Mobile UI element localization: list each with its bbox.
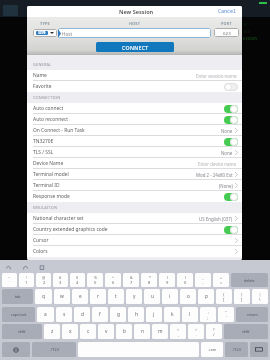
button[interactable]: Terminal ID bbox=[27, 180, 242, 191]
button[interactable]: g bbox=[110, 307, 126, 322]
button[interactable]: x bbox=[62, 324, 78, 339]
button[interactable]: $ bbox=[70, 273, 85, 287]
button[interactable]: d bbox=[74, 307, 90, 322]
other: Hide keyboard bbox=[255, 346, 263, 354]
button[interactable]: # bbox=[53, 273, 68, 287]
button[interactable]: delete bbox=[231, 273, 268, 287]
button[interactable]: e bbox=[72, 289, 88, 304]
button[interactable]: f bbox=[92, 307, 108, 322]
button[interactable]: tab bbox=[2, 289, 33, 304]
button[interactable] bbox=[224, 83, 238, 91]
staticText: x bbox=[69, 328, 72, 335]
staticText: .?123 bbox=[232, 347, 241, 352]
button[interactable]: m bbox=[152, 324, 168, 339]
button[interactable]: shift bbox=[224, 324, 268, 339]
button[interactable]: z bbox=[44, 324, 60, 339]
button[interactable]: u bbox=[144, 289, 160, 304]
button[interactable]: Undo bbox=[5, 264, 12, 271]
button[interactable]: TN3270E bbox=[27, 136, 242, 147]
button[interactable]: < bbox=[170, 324, 186, 339]
staticText: % bbox=[94, 275, 97, 280]
button[interactable]: .?123 bbox=[32, 342, 76, 357]
button[interactable]: National character set bbox=[27, 213, 242, 224]
staticText: k bbox=[171, 311, 174, 318]
button[interactable]: Country extended graphics code bbox=[27, 224, 242, 235]
button[interactable]: Auto connect bbox=[27, 103, 242, 114]
button[interactable] bbox=[224, 105, 238, 113]
button[interactable]: Host bbox=[58, 28, 211, 38]
button[interactable]: ? bbox=[206, 324, 222, 339]
staticText: q bbox=[42, 293, 45, 300]
button[interactable]: Cancel bbox=[218, 8, 237, 15]
staticText: delete bbox=[244, 278, 255, 283]
button[interactable]: : bbox=[200, 307, 216, 322]
button[interactable]: k bbox=[164, 307, 180, 322]
button[interactable]: .?123 bbox=[225, 342, 248, 357]
button[interactable]: Hide keyboard bbox=[250, 342, 268, 357]
staticText: h bbox=[135, 311, 138, 318]
staticText: Device Name bbox=[33, 160, 64, 167]
button[interactable]: caps lock bbox=[2, 307, 35, 322]
button[interactable]: Device Name bbox=[27, 158, 242, 169]
button[interactable]: j bbox=[146, 307, 162, 322]
button[interactable]: > bbox=[188, 324, 204, 339]
button[interactable]: ( bbox=[159, 273, 175, 287]
button[interactable]: q bbox=[35, 289, 52, 304]
button[interactable]: i bbox=[162, 289, 178, 304]
button[interactable]: w bbox=[54, 289, 70, 304]
button[interactable]: l bbox=[182, 307, 198, 322]
button[interactable]: s bbox=[56, 307, 72, 322]
button[interactable]: t bbox=[108, 289, 124, 304]
button[interactable]: Auto reconnect bbox=[27, 114, 242, 125]
button[interactable]: Cursor bbox=[27, 235, 242, 246]
button[interactable]: & bbox=[123, 273, 139, 287]
button[interactable]: c bbox=[80, 324, 96, 339]
button[interactable]: Redo bbox=[22, 264, 29, 271]
button[interactable]: _ bbox=[195, 273, 211, 287]
button[interactable]: % bbox=[87, 273, 103, 287]
button[interactable]: p bbox=[198, 289, 214, 304]
button[interactable]: + bbox=[213, 273, 229, 287]
button[interactable]: n bbox=[134, 324, 150, 339]
button[interactable]: Paste bbox=[39, 264, 46, 271]
button[interactable] bbox=[224, 138, 238, 146]
button[interactable]: y bbox=[126, 289, 142, 304]
button[interactable]: @ bbox=[36, 273, 51, 287]
button[interactable]: Name bbox=[27, 70, 242, 81]
button[interactable]: b bbox=[116, 324, 132, 339]
staticText: TEX bbox=[243, 29, 251, 34]
button[interactable]: } bbox=[234, 289, 250, 304]
staticText: Country extended graphics code bbox=[33, 226, 108, 233]
button[interactable]: .com bbox=[201, 342, 223, 357]
button[interactable] bbox=[224, 116, 238, 124]
button[interactable]: ^ bbox=[105, 273, 121, 287]
button[interactable]: " bbox=[218, 307, 234, 322]
button[interactable]: * bbox=[141, 273, 157, 287]
button[interactable]: Favorite bbox=[27, 81, 242, 92]
button[interactable]: o bbox=[180, 289, 196, 304]
button[interactable]: CONNECT bbox=[96, 42, 174, 52]
button[interactable]: v bbox=[98, 324, 114, 339]
button[interactable]: { bbox=[216, 289, 232, 304]
staticText: PORT bbox=[221, 21, 232, 26]
button[interactable]: ~ bbox=[2, 273, 17, 287]
button[interactable]: | bbox=[252, 289, 268, 304]
button[interactable]: return bbox=[236, 307, 268, 322]
button[interactable]: 623 bbox=[214, 28, 239, 37]
button[interactable]: Response mode bbox=[27, 191, 242, 202]
button[interactable]: a bbox=[37, 307, 54, 322]
staticText: None bbox=[221, 150, 233, 156]
button[interactable]: TLS / SSL bbox=[27, 147, 242, 158]
button[interactable]: On Connect - Run Task bbox=[27, 125, 242, 136]
button[interactable]: h bbox=[128, 307, 144, 322]
button[interactable]: Change keyboard bbox=[2, 342, 30, 357]
button[interactable]: shift bbox=[2, 324, 42, 339]
button[interactable]: Terminal model bbox=[27, 169, 242, 180]
button[interactable]: Colors bbox=[27, 246, 242, 257]
button[interactable]: r bbox=[90, 289, 106, 304]
button[interactable]: ! bbox=[19, 273, 34, 287]
button[interactable]: ) bbox=[177, 273, 193, 287]
button[interactable] bbox=[224, 226, 238, 234]
button[interactable] bbox=[224, 193, 238, 201]
